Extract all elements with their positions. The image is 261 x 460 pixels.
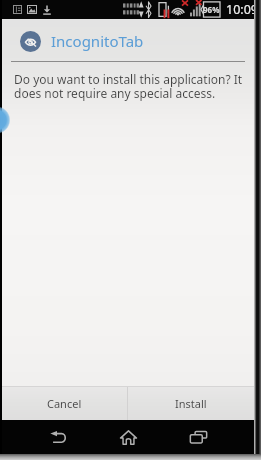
staticText: IncognitoTab <box>51 31 144 51</box>
staticText: Install <box>175 396 207 411</box>
button[interactable]: Recent apps <box>170 420 226 454</box>
staticText: Cancel <box>47 396 82 411</box>
staticText: 96% <box>203 4 220 15</box>
staticText: Do you want to install this application?… <box>14 71 246 102</box>
button[interactable]: Cancel <box>2 387 127 420</box>
button[interactable]: Home <box>100 420 156 454</box>
staticText: 10:09 <box>226 1 258 18</box>
button[interactable]: Back <box>30 420 86 454</box>
button[interactable]: Install <box>128 387 254 420</box>
